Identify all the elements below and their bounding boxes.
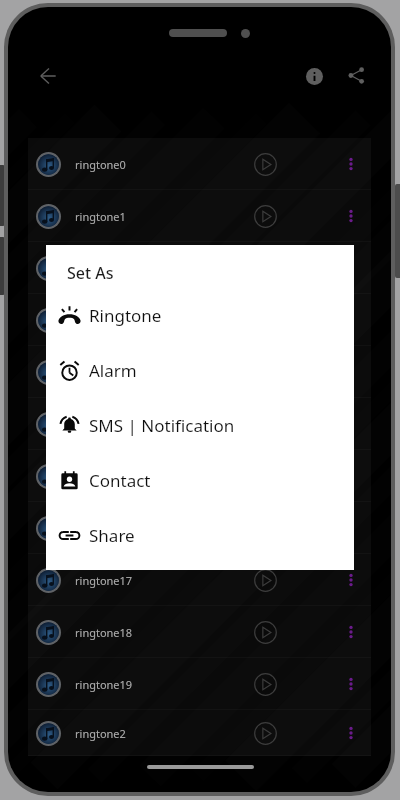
button[interactable]: ringtone0 [28,138,371,190]
staticText: ringtone0 [75,157,245,172]
button[interactable]: More options [336,617,366,647]
button[interactable]: ringtone12 [28,294,371,346]
button[interactable]: More options [336,513,366,543]
button[interactable]: More options [336,305,366,335]
button[interactable]: Play [245,144,285,184]
button[interactable]: Play [245,664,285,704]
button[interactable]: Play [245,713,285,753]
staticText: ringtone11 [75,261,245,276]
button[interactable]: Contact [46,453,354,508]
button[interactable]: SMS | Notification [46,398,354,453]
button[interactable]: More options [336,565,366,595]
button[interactable]: Share [334,53,378,97]
button[interactable]: ringtone13 [28,346,371,398]
staticText: ringtone19 [75,677,245,692]
button[interactable]: More options [336,409,366,439]
staticText: SMS | Notification [89,414,235,437]
button[interactable]: More options [336,669,366,699]
staticText: ringtone18 [75,625,245,640]
button[interactable]: ringtone16 [28,502,371,554]
staticText: ringtone16 [75,521,245,536]
button[interactable]: Alarm [46,343,354,398]
button[interactable]: Info [292,54,336,98]
staticText: Alarm [89,359,137,382]
staticText: ringtone17 [75,573,245,588]
staticText: Contact [89,469,151,492]
button[interactable]: Ringtone [46,288,354,343]
button[interactable]: More options [336,357,366,387]
button[interactable]: More options [336,149,366,179]
button[interactable]: More options [336,461,366,491]
button[interactable]: Share [46,508,354,563]
staticText: ringtone14 [75,417,245,432]
button[interactable]: More options [336,253,366,283]
button[interactable]: More options [336,718,366,748]
button[interactable]: Play [245,612,285,652]
button[interactable]: ringtone17 [28,554,371,606]
staticText: ringtone2 [75,726,245,741]
button[interactable]: More options [336,201,366,231]
staticText: ringtone1 [75,209,245,224]
button[interactable]: ringtone1 [28,190,371,242]
button[interactable]: ringtone11 [28,242,371,294]
button[interactable]: ringtone19 [28,658,371,710]
staticText: ringtone15 [75,469,245,484]
button[interactable]: ringtone15 [28,450,371,502]
staticText: Set As [67,262,114,284]
staticText: Share [89,524,135,547]
staticText: Ringtone [89,304,162,327]
button[interactable]: Play [245,560,285,600]
staticText: ringtone13 [75,365,245,380]
button[interactable]: Back [26,54,70,98]
button[interactable]: ringtone2 [28,710,371,756]
button[interactable]: ringtone14 [28,398,371,450]
staticText: ringtone12 [75,313,245,328]
button[interactable]: Play [245,196,285,236]
button[interactable]: ringtone18 [28,606,371,658]
